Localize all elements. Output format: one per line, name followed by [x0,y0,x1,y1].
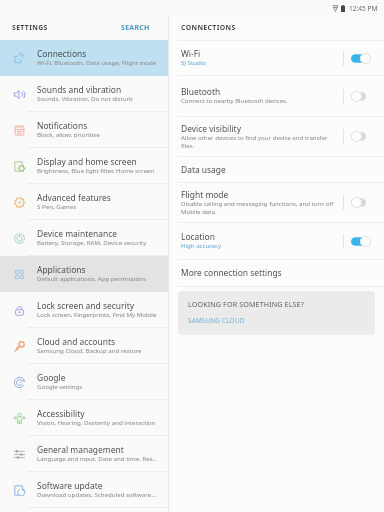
button[interactable]: Lock screen and security [0,292,168,328]
button[interactable]: Toggle Device visibility [351,131,371,142]
staticText: Display and home screen [37,156,137,168]
staticText: Default applications, App permissions [37,274,146,282]
button[interactable]: Google [0,364,168,400]
staticText: Block, allow, prioritise [37,130,100,138]
button[interactable]: Notifications [0,112,168,148]
staticText: LOOKING FOR SOMETHING ELSE? [188,299,304,309]
staticText: More connection settings [181,267,282,279]
staticText: SEARCH [121,23,150,32]
button[interactable]: SEARCH [121,23,150,32]
staticText: Advanced features [37,192,111,204]
staticText: Accessibility [37,408,85,420]
button[interactable]: Applications [0,256,168,292]
staticText: Allow other devices to find your device … [181,133,336,149]
button[interactable]: Toggle Flight mode [351,197,371,208]
button[interactable]: Device maintenance [0,220,168,256]
button[interactable]: General management [0,436,168,472]
staticText: Flight mode [181,189,229,201]
button[interactable]: Data usage [169,157,384,182]
button[interactable]: Cloud and accounts [0,328,168,364]
staticText: Disable calling and messaging functions,… [181,199,336,215]
staticText: Google settings [37,382,83,390]
staticText: 12:45 PM [349,4,378,13]
staticText: Data usage [181,164,226,176]
staticText: General management [37,444,124,456]
button[interactable]: More connection settings [169,260,384,286]
button[interactable]: Display and home screen [0,148,168,184]
button[interactable]: Sounds and vibration [0,76,168,112]
staticText: Applications [37,264,86,276]
button[interactable]: Bluetooth [169,76,384,116]
staticText: CONNECTIONS [181,23,236,32]
button[interactable]: Toggle Bluetooth [351,91,371,102]
staticText: Notifications [37,120,88,132]
staticText: Location [181,231,215,243]
staticText: Samsung Cloud, Backup and restore [37,346,142,354]
staticText: Brightness, Blue light filter, Home scre… [37,166,155,174]
button[interactable]: Advanced features [0,184,168,220]
button[interactable]: Toggle Location [351,236,371,247]
staticText: Lock screen, Fingerprints, Find My Mobil… [37,310,157,318]
staticText: SJ Studio [181,58,206,66]
staticText: Battery, Storage, RAM, Device security [37,238,147,246]
staticText: Bluetooth [181,86,221,98]
staticText: Sounds, Vibration, Do not disturb [37,94,133,102]
button[interactable]: Device visibility [169,117,384,156]
staticText: Wi-Fi, Bluetooth, Data usage, Flight mod… [37,58,157,66]
staticText: SETTINGS [12,23,48,32]
button[interactable]: Wi-Fi [169,41,384,75]
staticText: Vision, Hearing, Dexterity and interacti… [37,418,156,426]
staticText: Connect to nearby Bluetooth devices. [181,96,288,104]
staticText: Wi-Fi [181,48,201,60]
staticText: Google [37,372,66,384]
button[interactable]: LOOKING FOR SOMETHING ELSE? [178,291,375,335]
button[interactable]: Accessibility [0,400,168,436]
staticText: Language and input, Date and time, Res… [37,454,158,462]
button[interactable]: Connections [0,40,168,76]
staticText: Download updates, Scheduled software… [37,490,157,498]
staticText: S Pen, Games [37,202,77,210]
staticText: Cloud and accounts [37,336,115,348]
staticText: Lock screen and security [37,300,135,312]
staticText: Device visibility [181,123,241,135]
button[interactable]: Location [169,223,384,259]
staticText: High accuracy [181,241,222,249]
staticText: Sounds and vibration [37,84,122,96]
button[interactable]: Toggle Wi-Fi [351,53,371,64]
button[interactable]: Flight mode [169,183,384,222]
staticText: SAMSUNG CLOUD [188,316,245,325]
button[interactable]: Software update [0,472,168,508]
staticText: Device maintenance [37,228,118,240]
staticText: Connections [37,48,87,60]
staticText: Software update [37,480,103,492]
